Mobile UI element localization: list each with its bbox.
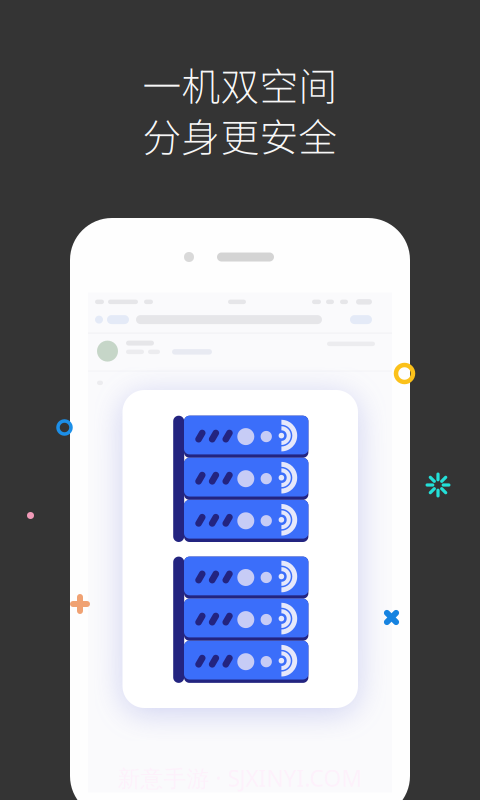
staticText: 一机双空间	[142, 56, 337, 112]
staticText: 分身更安全	[142, 107, 337, 163]
